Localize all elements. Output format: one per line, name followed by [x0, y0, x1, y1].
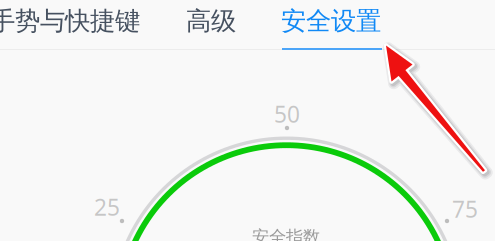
staticText: 安全指数 — [252, 226, 320, 241]
staticText: 50 — [274, 99, 300, 129]
staticText: 25 — [94, 192, 120, 222]
button[interactable]: 手势与快捷键 — [0, 5, 140, 36]
staticText: 手势与快捷键 — [0, 5, 140, 36]
button[interactable]: 安全设置 — [281, 5, 381, 36]
button[interactable]: 高级 — [186, 5, 236, 36]
staticText: 75 — [452, 194, 478, 224]
staticText: 安全设置 — [281, 5, 381, 36]
staticText: 高级 — [186, 5, 236, 36]
